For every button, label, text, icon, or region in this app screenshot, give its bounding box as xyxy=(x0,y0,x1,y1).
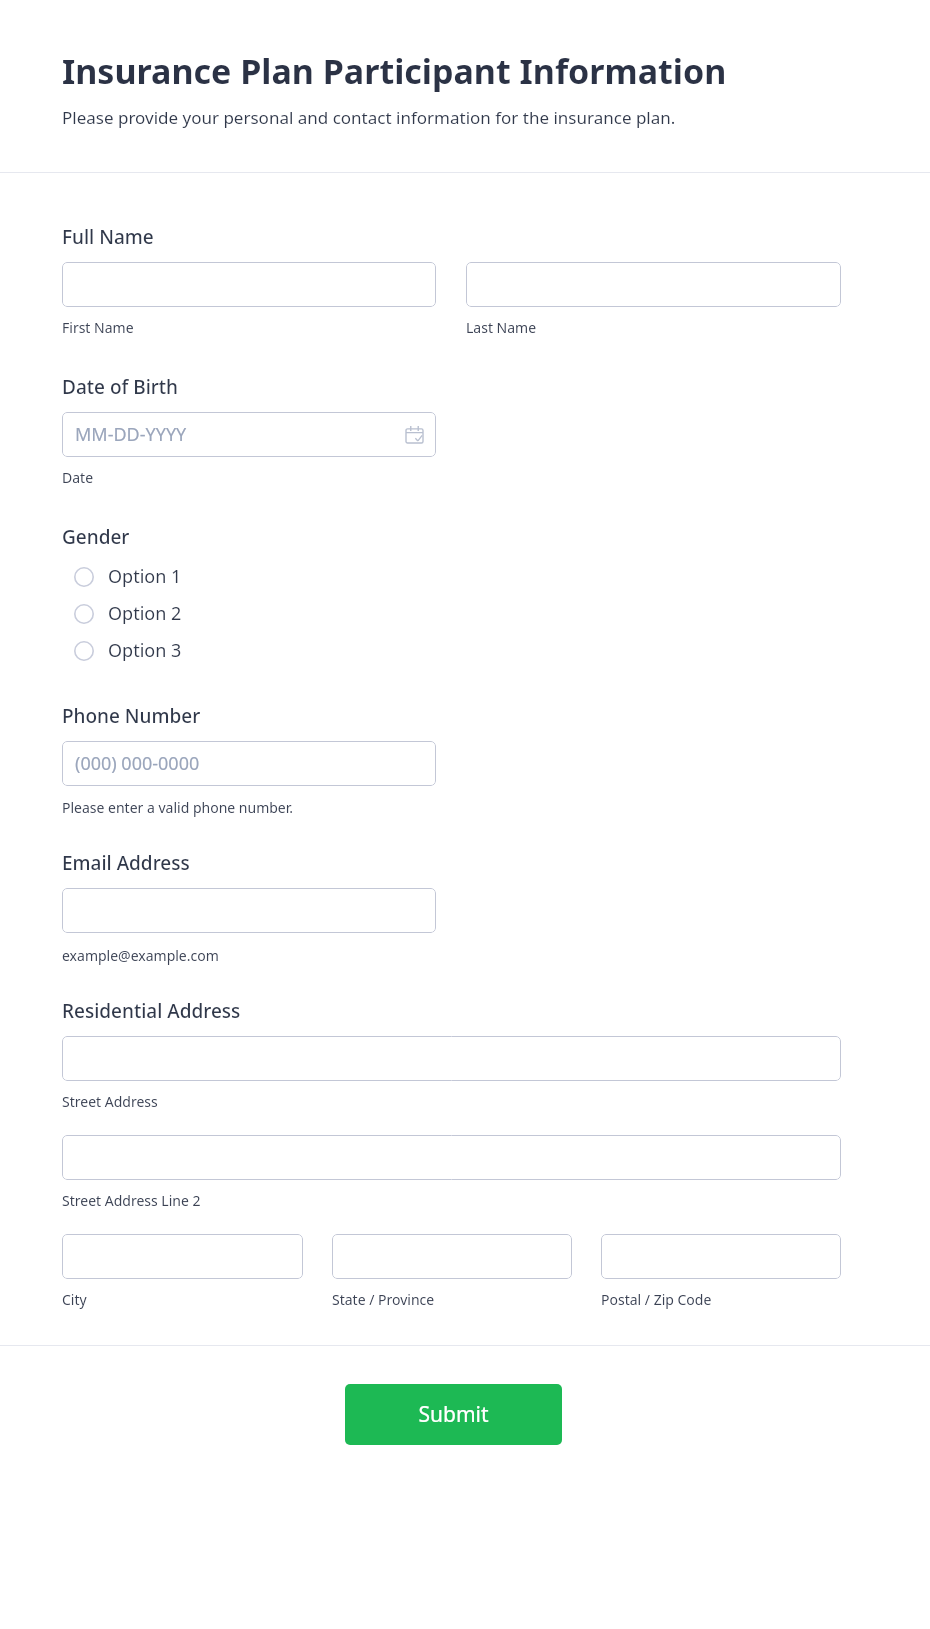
button[interactable] xyxy=(62,262,436,307)
button[interactable] xyxy=(62,1234,303,1279)
staticText: Postal / Zip Code xyxy=(601,1290,712,1309)
button[interactable] xyxy=(601,1234,841,1279)
staticText: Option 1 xyxy=(108,564,182,589)
staticText: City xyxy=(62,1290,87,1309)
staticText: Phone Number xyxy=(62,703,201,729)
staticText: Last Name xyxy=(466,318,537,337)
staticText: First Name xyxy=(62,318,134,337)
staticText: Full Name xyxy=(62,224,154,250)
staticText: Please provide your personal and contact… xyxy=(62,106,676,129)
staticText: Option 2 xyxy=(108,601,182,626)
button[interactable]: MM-DD-YYYY xyxy=(62,412,436,457)
staticText: (000) 000-0000 xyxy=(75,751,200,776)
staticText: State / Province xyxy=(332,1290,435,1309)
button[interactable] xyxy=(466,262,841,307)
button[interactable]: Option 2 xyxy=(62,595,530,632)
staticText: Email Address xyxy=(62,850,190,876)
staticText: Street Address xyxy=(62,1092,158,1111)
button[interactable]: Option 3 xyxy=(62,632,530,669)
button[interactable]: Submit xyxy=(345,1384,562,1445)
staticText: Submit xyxy=(418,1400,489,1429)
staticText: Residential Address xyxy=(62,998,241,1024)
button[interactable]: (000) 000-0000 xyxy=(62,741,436,786)
staticText: Please enter a valid phone number. xyxy=(62,798,294,817)
staticText: Date xyxy=(62,468,94,487)
staticText: Insurance Plan Participant Information xyxy=(62,48,727,94)
staticText: Date of Birth xyxy=(62,374,178,400)
button[interactable] xyxy=(62,888,436,933)
staticText: Gender xyxy=(62,524,130,550)
button[interactable]: Option 1 xyxy=(62,558,530,595)
staticText: Street Address Line 2 xyxy=(62,1191,201,1210)
button[interactable] xyxy=(62,1135,841,1180)
button[interactable] xyxy=(62,1036,841,1081)
staticText: MM-DD-YYYY xyxy=(75,422,187,447)
staticText: example@example.com xyxy=(62,946,219,965)
staticText: Option 3 xyxy=(108,638,182,663)
button[interactable] xyxy=(332,1234,572,1279)
